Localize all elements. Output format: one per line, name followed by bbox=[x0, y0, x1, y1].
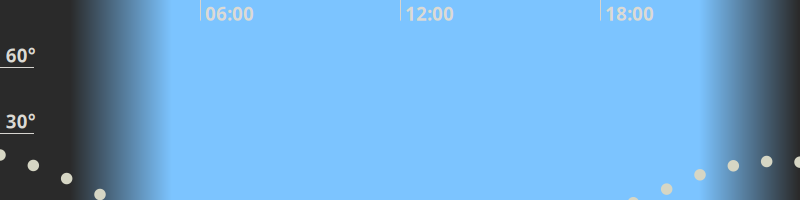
staticText: 30° bbox=[6, 109, 36, 134]
staticText: 60° bbox=[6, 43, 36, 68]
staticText: 18:00 bbox=[605, 1, 654, 26]
staticText: 06:00 bbox=[205, 1, 254, 26]
staticText: 12:00 bbox=[405, 1, 454, 26]
